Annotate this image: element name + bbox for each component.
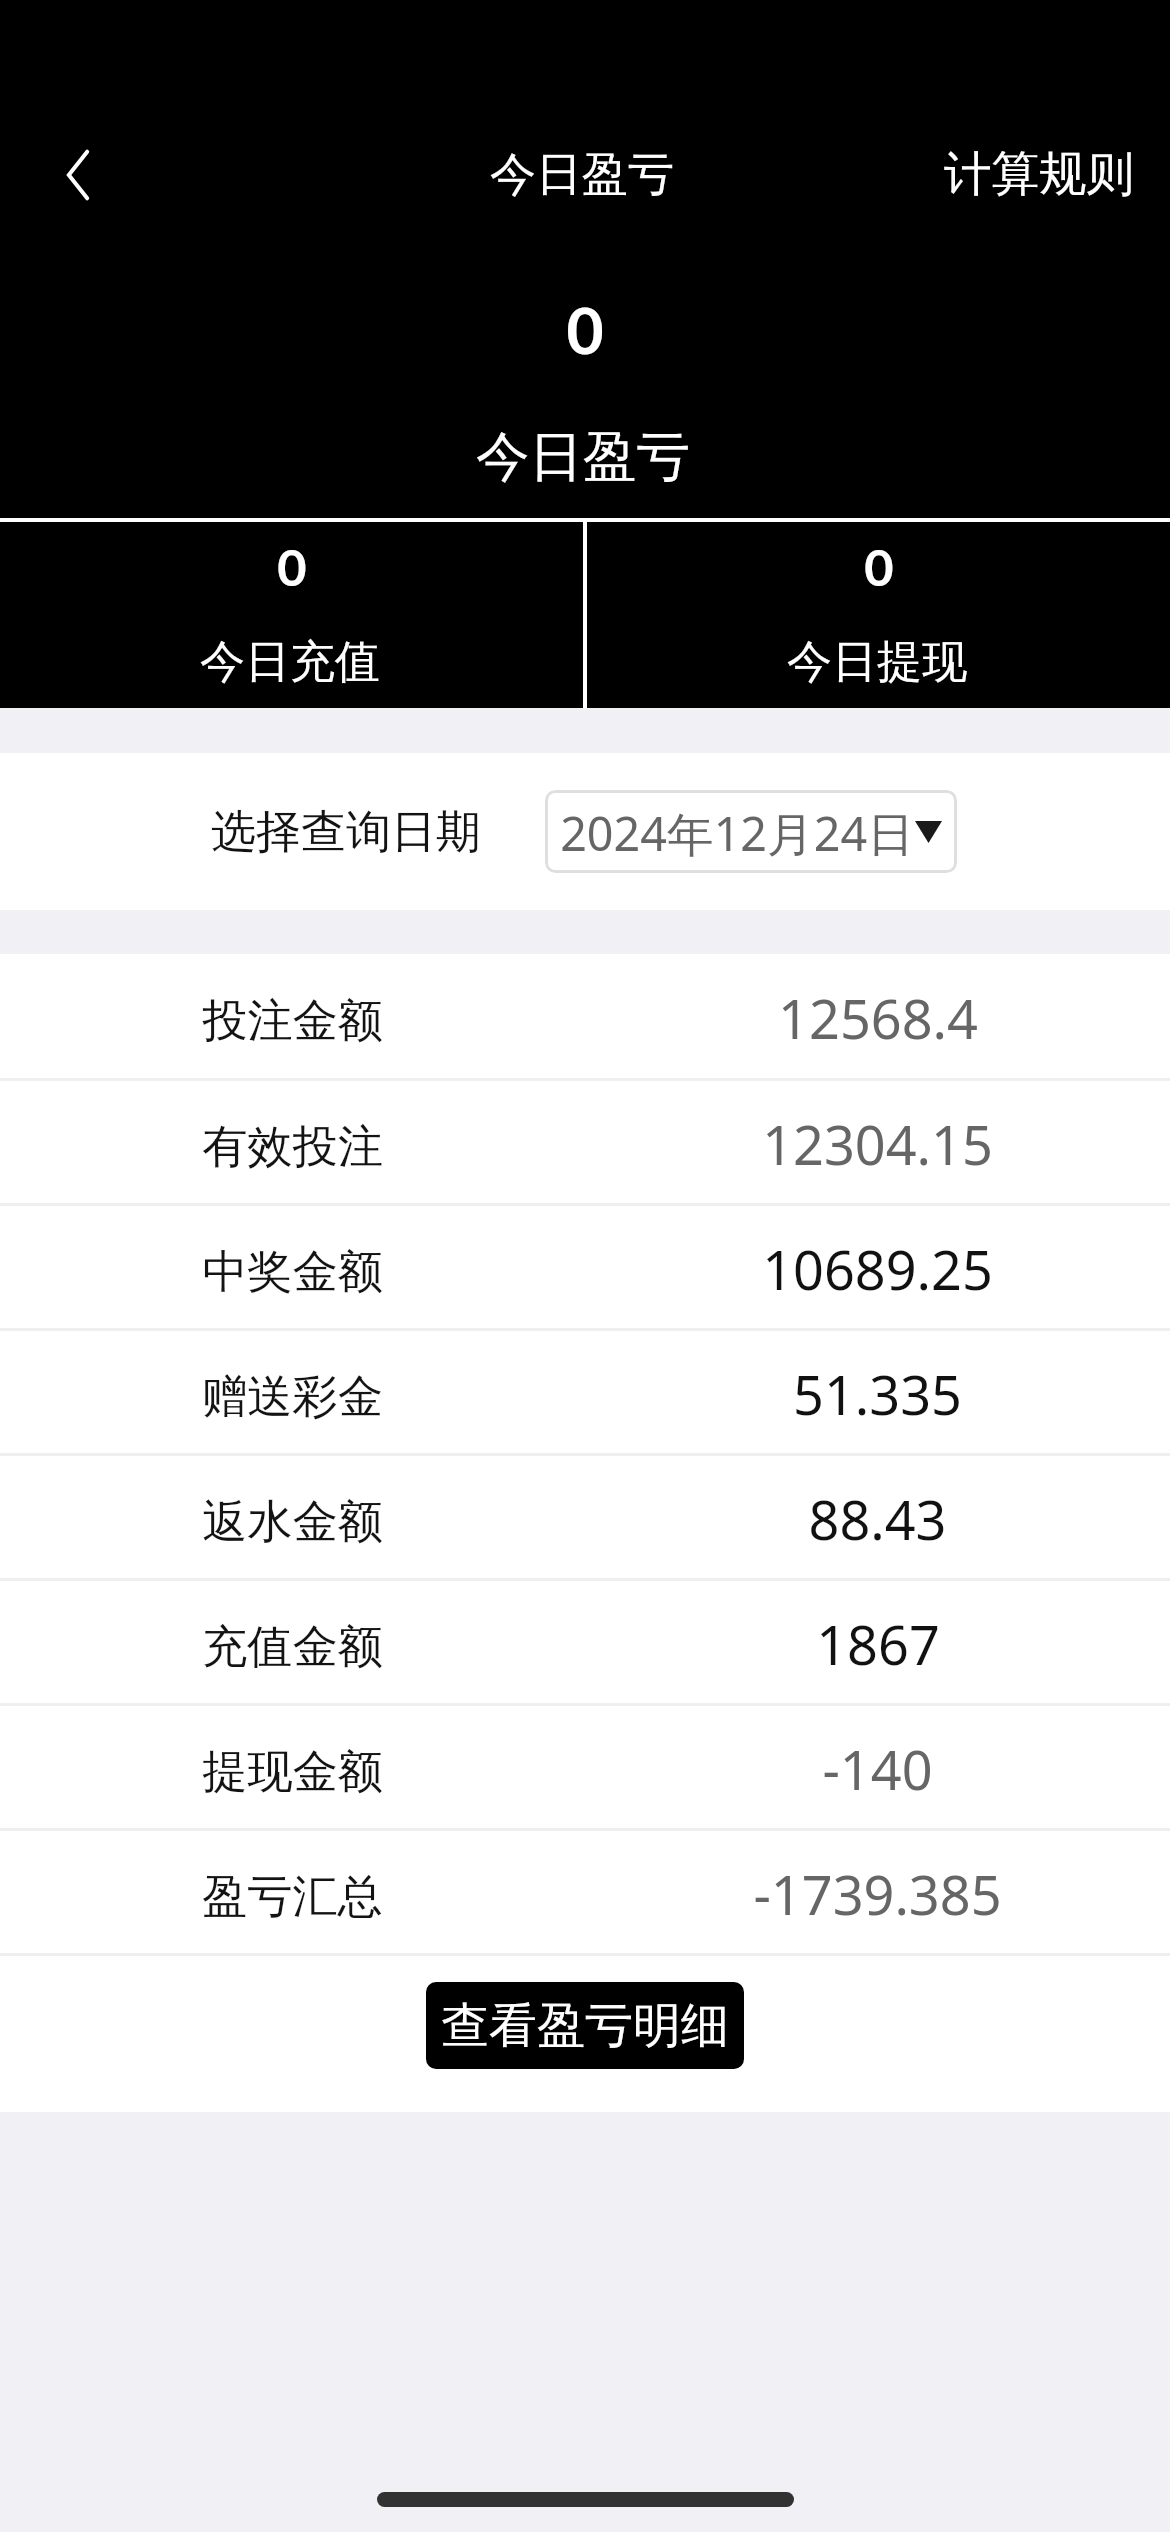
staticText: 12568.4 xyxy=(778,981,978,1055)
button[interactable]: 充值金额 xyxy=(0,1581,1170,1703)
button[interactable]: 0 xyxy=(587,522,1170,708)
button[interactable]: 有效投注 xyxy=(0,1081,1170,1203)
staticText: 0 xyxy=(566,291,604,368)
staticText: 有效投注 xyxy=(202,1118,383,1175)
staticText: 中奖金额 xyxy=(202,1243,383,1300)
button[interactable]: 盈亏汇总 xyxy=(0,1831,1170,1953)
button[interactable]: 中奖金额 xyxy=(0,1206,1170,1328)
staticText: 0 xyxy=(864,536,894,597)
staticText: 赠送彩金 xyxy=(202,1368,383,1425)
staticText: 选择查询日期 xyxy=(211,804,481,861)
staticText: 0 xyxy=(277,536,307,597)
staticText: 今日盈亏 xyxy=(490,146,674,204)
staticText: 12304.15 xyxy=(762,1107,993,1181)
staticText: 今日盈亏 xyxy=(476,423,690,490)
button[interactable]: 0 xyxy=(0,522,583,708)
staticText: 查看盈亏明细 xyxy=(441,1996,729,2056)
button[interactable]: 计算规则 xyxy=(920,112,1170,228)
button[interactable]: 查看盈亏明细 xyxy=(426,1982,744,2069)
staticText: 2024年12月24日 xyxy=(560,801,914,865)
button[interactable]: 赠送彩金 xyxy=(0,1331,1170,1453)
staticText: -140 xyxy=(822,1732,933,1806)
staticText: 1867 xyxy=(816,1607,940,1681)
button[interactable]: 2024年12月24日 xyxy=(545,790,957,873)
staticText: 返水金额 xyxy=(202,1493,383,1550)
button[interactable]: 返水金额 xyxy=(0,1456,1170,1578)
staticText: 51.335 xyxy=(793,1357,962,1431)
staticText: 提现金额 xyxy=(202,1743,383,1800)
button[interactable]: Back xyxy=(40,137,116,213)
staticText: -1739.385 xyxy=(753,1857,1002,1931)
staticText: 充值金额 xyxy=(202,1618,383,1675)
button[interactable]: 提现金额 xyxy=(0,1706,1170,1828)
staticText: 今日充值 xyxy=(200,634,380,691)
staticText: 今日提现 xyxy=(787,634,967,691)
staticText: 计算规则 xyxy=(944,144,1134,204)
staticText: 盈亏汇总 xyxy=(202,1868,383,1925)
staticText: 10689.25 xyxy=(762,1232,993,1306)
button[interactable]: 投注金额 xyxy=(0,954,1170,1078)
staticText: 投注金额 xyxy=(202,992,383,1049)
staticText: 88.43 xyxy=(808,1482,947,1556)
